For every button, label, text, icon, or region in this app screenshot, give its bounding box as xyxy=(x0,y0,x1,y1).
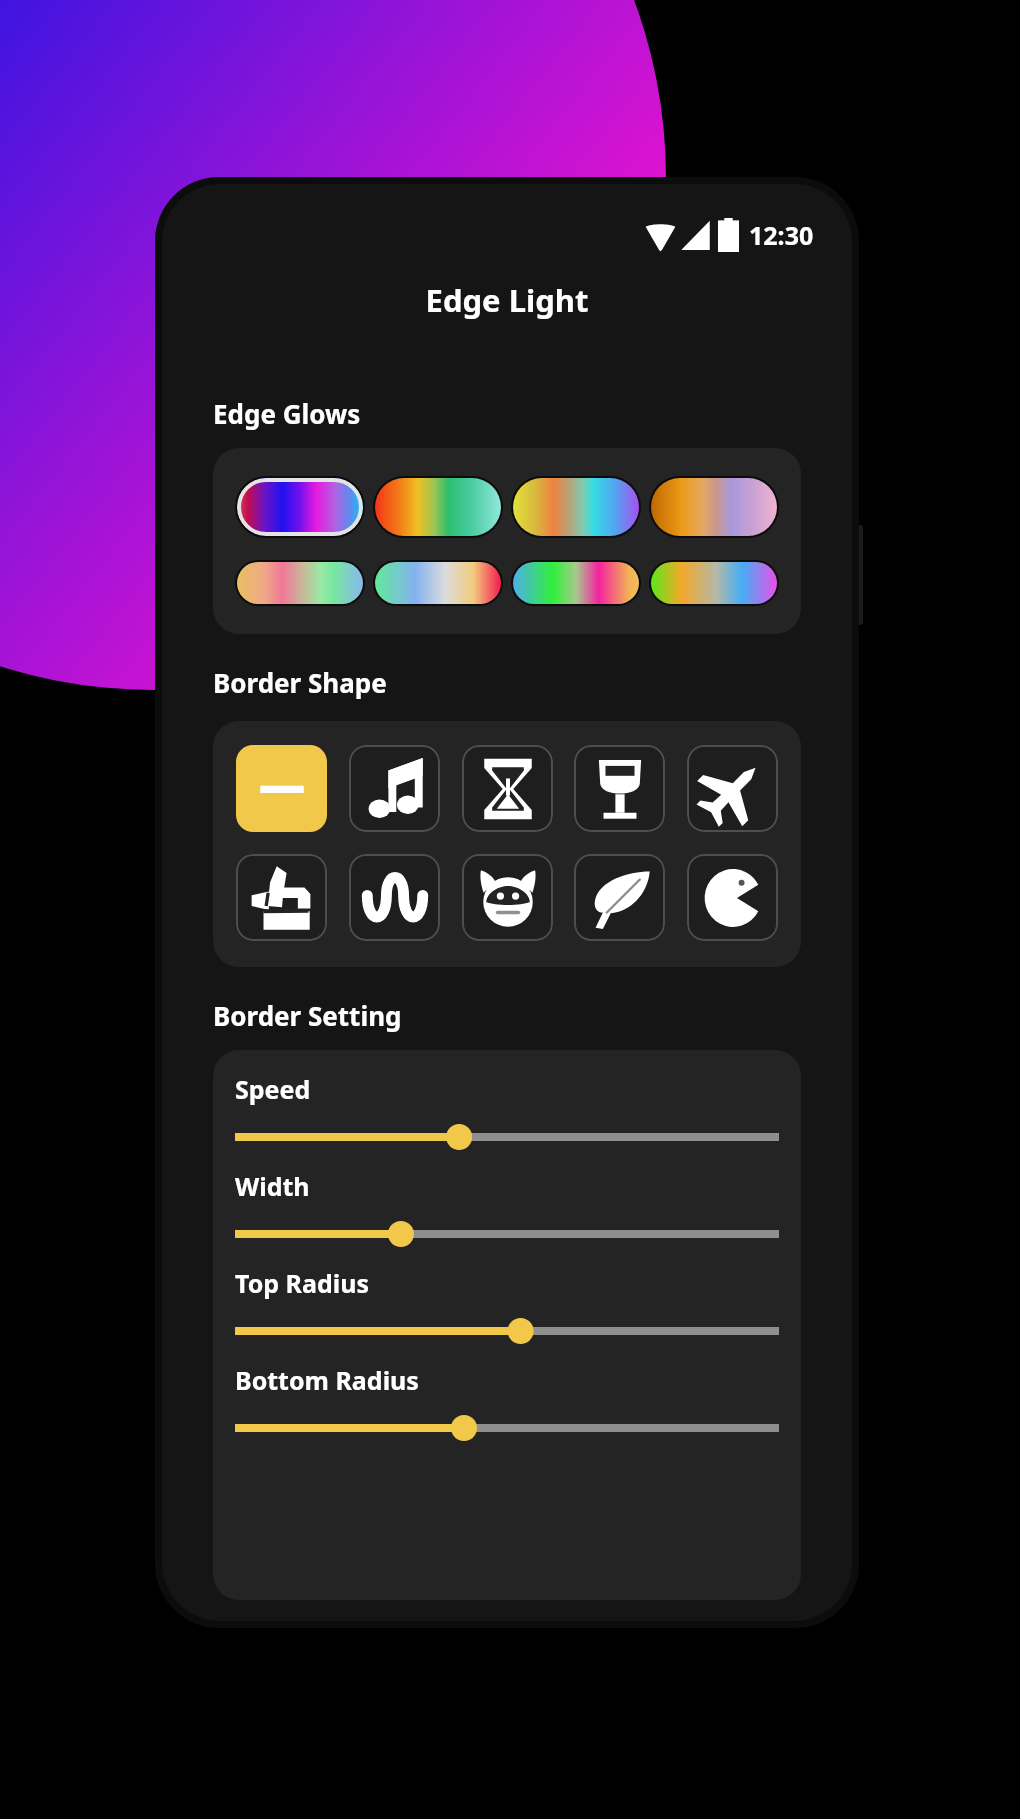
button[interactable]: Wine glass xyxy=(574,745,665,832)
button[interactable]: Airplane xyxy=(687,745,778,832)
button[interactable]: Devil xyxy=(462,854,553,941)
button[interactable]: Thumbs up xyxy=(236,854,327,941)
button[interactable]: Edge glow 3 xyxy=(511,476,641,538)
button[interactable]: Edge glow 7 xyxy=(511,560,641,606)
staticText: Border Shape xyxy=(213,665,387,700)
button[interactable]: Speed slider xyxy=(235,1122,779,1152)
button[interactable]: Hourglass xyxy=(462,745,553,832)
staticText: Edge Glows xyxy=(213,396,361,431)
button[interactable]: Moon xyxy=(687,854,778,941)
staticText: 12:30 xyxy=(749,218,814,252)
button[interactable]: Edge glow 2 xyxy=(373,476,503,538)
button[interactable]: Line xyxy=(236,745,327,832)
button[interactable]: Edge glow 6 xyxy=(373,560,503,606)
staticText: Bottom Radius xyxy=(235,1363,419,1397)
staticText: Speed xyxy=(235,1072,311,1106)
button[interactable]: Edge glow 1 xyxy=(235,476,365,538)
button[interactable]: Top Radius slider xyxy=(235,1316,779,1346)
staticText: Edge Light xyxy=(162,279,852,321)
button[interactable]: Edge glow 4 xyxy=(649,476,779,538)
button[interactable]: Edge glow 8 xyxy=(649,560,779,606)
staticText: Width xyxy=(235,1169,310,1203)
button[interactable]: Music note xyxy=(349,745,440,832)
button[interactable]: Feather xyxy=(574,854,665,941)
button[interactable]: Width slider xyxy=(235,1219,779,1249)
staticText: Top Radius xyxy=(235,1266,370,1300)
button[interactable]: Wave xyxy=(349,854,440,941)
button[interactable]: Edge glow 5 xyxy=(235,560,365,606)
staticText: Border Setting xyxy=(213,998,402,1033)
button[interactable]: Bottom Radius slider xyxy=(235,1413,779,1443)
